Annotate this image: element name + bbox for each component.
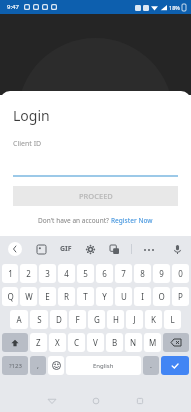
- staticText: B: [112, 337, 118, 348]
- button[interactable]: Back: [8, 242, 22, 256]
- button[interactable]: 2: [20, 264, 37, 283]
- button[interactable]: Shift: [2, 333, 28, 352]
- button[interactable]: M: [144, 333, 161, 352]
- button[interactable]: P: [172, 287, 189, 306]
- button[interactable]: B: [106, 333, 123, 352]
- staticText: L: [170, 314, 175, 325]
- button[interactable]: V: [87, 333, 104, 352]
- button[interactable]: Emoji: [48, 356, 64, 375]
- button[interactable]: English: [66, 356, 141, 375]
- staticText: H: [113, 314, 119, 325]
- staticText: P: [178, 291, 183, 302]
- staticText: Q: [7, 291, 14, 302]
- staticText: 6: [102, 268, 107, 279]
- button[interactable]: Back: [39, 390, 65, 412]
- button[interactable]: 4: [58, 264, 75, 283]
- staticText: F: [75, 314, 80, 325]
- button[interactable]: Enter: [161, 356, 189, 375]
- button[interactable]: J: [126, 310, 143, 329]
- staticText: 2: [26, 268, 31, 279]
- button[interactable]: C: [68, 333, 85, 352]
- staticText: ?123: [9, 362, 22, 370]
- button[interactable]: D: [50, 310, 67, 329]
- button[interactable]: K: [145, 310, 162, 329]
- button[interactable]: 1: [2, 264, 18, 283]
- staticText: 7: [121, 268, 126, 279]
- staticText: E: [45, 291, 50, 302]
- staticText: PROCEED: [79, 191, 113, 201]
- button[interactable]: Home: [83, 390, 109, 412]
- button[interactable]: L: [164, 310, 181, 329]
- staticText: 18%: [169, 4, 180, 11]
- button[interactable]: Translate: [109, 244, 120, 255]
- staticText: V: [93, 337, 98, 348]
- button[interactable]: F: [69, 310, 86, 329]
- staticText: T: [83, 291, 88, 302]
- staticText: GIF: [60, 244, 72, 254]
- staticText: English: [93, 362, 114, 370]
- button[interactable]: Z: [30, 333, 47, 352]
- button[interactable]: GIF: [60, 244, 72, 254]
- staticText: 9: [159, 268, 164, 279]
- button[interactable]: T: [77, 287, 94, 306]
- button[interactable]: Backspace: [163, 333, 189, 352]
- staticText: N: [130, 337, 137, 348]
- button[interactable]: ,: [30, 356, 46, 375]
- button[interactable]: 7: [115, 264, 132, 283]
- button[interactable]: O: [153, 287, 170, 306]
- button[interactable]: A: [10, 310, 28, 329]
- button[interactable]: 5: [77, 264, 94, 283]
- staticText: G: [94, 314, 100, 325]
- staticText: 8: [140, 268, 145, 279]
- staticText: Don't have an account?: [38, 216, 111, 225]
- button[interactable]: 3: [39, 264, 56, 283]
- button[interactable]: R: [58, 287, 75, 306]
- staticText: S: [37, 314, 42, 325]
- button[interactable]: Q: [2, 287, 18, 306]
- button[interactable]: PROCEED: [13, 186, 178, 206]
- staticText: K: [151, 314, 156, 325]
- staticText: Login: [13, 106, 50, 125]
- staticText: ,: [37, 361, 39, 371]
- staticText: 5: [83, 268, 88, 279]
- button[interactable]: W: [20, 287, 37, 306]
- button[interactable]: More options: [143, 244, 154, 255]
- button[interactable]: Y: [96, 287, 113, 306]
- staticText: X: [55, 337, 60, 348]
- staticText: A: [16, 314, 22, 325]
- staticText: .: [150, 361, 152, 371]
- button[interactable]: 0: [172, 264, 189, 283]
- staticText: W: [25, 291, 33, 302]
- button[interactable]: I: [134, 287, 151, 306]
- button[interactable]: U: [115, 287, 132, 306]
- button[interactable]: H: [107, 310, 124, 329]
- staticText: D: [56, 314, 62, 325]
- button[interactable]: Stickers: [36, 244, 47, 255]
- staticText: Y: [102, 291, 107, 302]
- button[interactable]: X: [49, 333, 66, 352]
- button[interactable]: Voice input: [171, 243, 183, 255]
- staticText: 9:47: [7, 3, 19, 11]
- staticText: M: [149, 337, 157, 348]
- button[interactable]: ?123: [2, 356, 28, 375]
- button[interactable]: E: [39, 287, 56, 306]
- button[interactable]: Recents: [127, 390, 153, 412]
- button[interactable]: 6: [96, 264, 113, 283]
- staticText: Client ID: [13, 139, 42, 149]
- button[interactable]: 8: [134, 264, 151, 283]
- button[interactable]: Register Now: [111, 216, 153, 225]
- staticText: Register Now: [111, 216, 153, 225]
- staticText: C: [74, 337, 80, 348]
- staticText: 4: [64, 268, 69, 279]
- button[interactable]: G: [88, 310, 105, 329]
- button[interactable]: S: [30, 310, 48, 329]
- staticText: Z: [36, 337, 41, 348]
- button[interactable]: 9: [153, 264, 170, 283]
- button[interactable]: Settings: [85, 244, 96, 255]
- staticText: R: [64, 291, 69, 302]
- staticText: 3: [45, 268, 50, 279]
- staticText: J: [133, 314, 136, 325]
- staticText: 0: [178, 268, 183, 279]
- button[interactable]: N: [125, 333, 142, 352]
- button[interactable]: .: [143, 356, 159, 375]
